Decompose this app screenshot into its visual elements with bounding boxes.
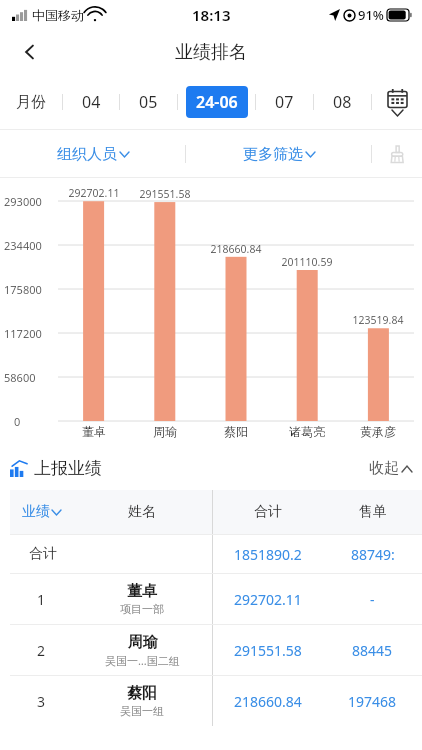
staticText: 姓名: [128, 503, 156, 521]
staticText: 周瑜: [133, 424, 197, 439]
staticText: 董卓: [62, 424, 126, 439]
button[interactable]: 业绩: [10, 490, 72, 534]
button[interactable]: 更多筛选: [186, 130, 371, 178]
button[interactable]: 2: [10, 625, 422, 675]
staticText: 292702.11: [62, 186, 126, 200]
staticText: 175800: [4, 282, 42, 297]
staticText: 08: [333, 91, 352, 113]
button[interactable]: 收起: [369, 459, 412, 478]
staticText: 诸葛亮: [275, 424, 339, 439]
staticText: 组织人员: [57, 145, 117, 164]
staticText: -: [370, 590, 375, 609]
staticText: 蔡阳: [127, 684, 157, 703]
button[interactable]: Back: [10, 32, 50, 72]
button[interactable]: 05: [120, 74, 177, 130]
staticText: 291551.58: [234, 641, 302, 660]
staticText: 291551.58: [133, 187, 197, 201]
staticText: 197468: [348, 692, 397, 711]
staticText: 黄承彦: [346, 424, 410, 439]
staticText: 123519.84: [346, 313, 410, 327]
staticText: 201110.59: [275, 255, 339, 269]
staticText: 2: [37, 641, 46, 660]
staticText: 292702.11: [234, 590, 302, 609]
staticText: 293000: [4, 194, 42, 209]
staticText: 58600: [4, 370, 36, 385]
staticText: 收起: [369, 459, 399, 478]
button[interactable]: 24-06: [178, 74, 255, 130]
staticText: 218660.84: [204, 242, 268, 256]
button[interactable]: 04: [63, 74, 119, 130]
staticText: 07: [275, 91, 294, 113]
button[interactable]: 月份: [0, 74, 62, 130]
staticText: 吴国一…国二组: [105, 653, 180, 668]
button[interactable]: Clear filters: [372, 130, 422, 178]
staticText: 中国移动: [32, 7, 84, 23]
staticText: 上报业绩: [34, 458, 102, 479]
staticText: 项目一部: [120, 602, 164, 616]
button[interactable]: 组织人员: [0, 130, 185, 178]
button[interactable]: 1: [10, 574, 422, 624]
staticText: 117200: [4, 326, 42, 341]
staticText: 更多筛选: [243, 145, 303, 164]
staticText: 88749:: [351, 545, 395, 564]
button[interactable]: 3: [10, 676, 422, 726]
staticText: 1: [37, 590, 46, 609]
staticText: 合计: [29, 545, 57, 563]
staticText: 周瑜: [128, 633, 158, 652]
button[interactable]: Pick date: [372, 74, 422, 130]
staticText: 业绩: [22, 503, 50, 521]
staticText: 吴国一组: [120, 704, 164, 718]
staticText: 3: [37, 692, 46, 711]
staticText: 234400: [4, 238, 42, 253]
staticText: 18:13: [192, 5, 231, 25]
staticText: 月份: [16, 93, 46, 112]
staticText: 业绩排名: [175, 41, 247, 64]
staticText: 88445: [352, 641, 393, 660]
staticText: 0: [14, 414, 21, 429]
staticText: 售单: [359, 503, 387, 521]
staticText: 05: [139, 91, 158, 113]
staticText: 蔡阳: [204, 424, 268, 439]
staticText: 合计: [254, 503, 282, 521]
staticText: 91%: [358, 6, 384, 24]
button[interactable]: 07: [256, 74, 313, 130]
button[interactable]: 合计: [10, 535, 422, 573]
staticText: 04: [82, 91, 101, 113]
staticText: 1851890.2: [234, 545, 302, 564]
staticText: 24-06: [196, 91, 238, 113]
staticText: 董卓: [127, 582, 157, 601]
staticText: 218660.84: [234, 692, 302, 711]
button[interactable]: 08: [314, 74, 371, 130]
